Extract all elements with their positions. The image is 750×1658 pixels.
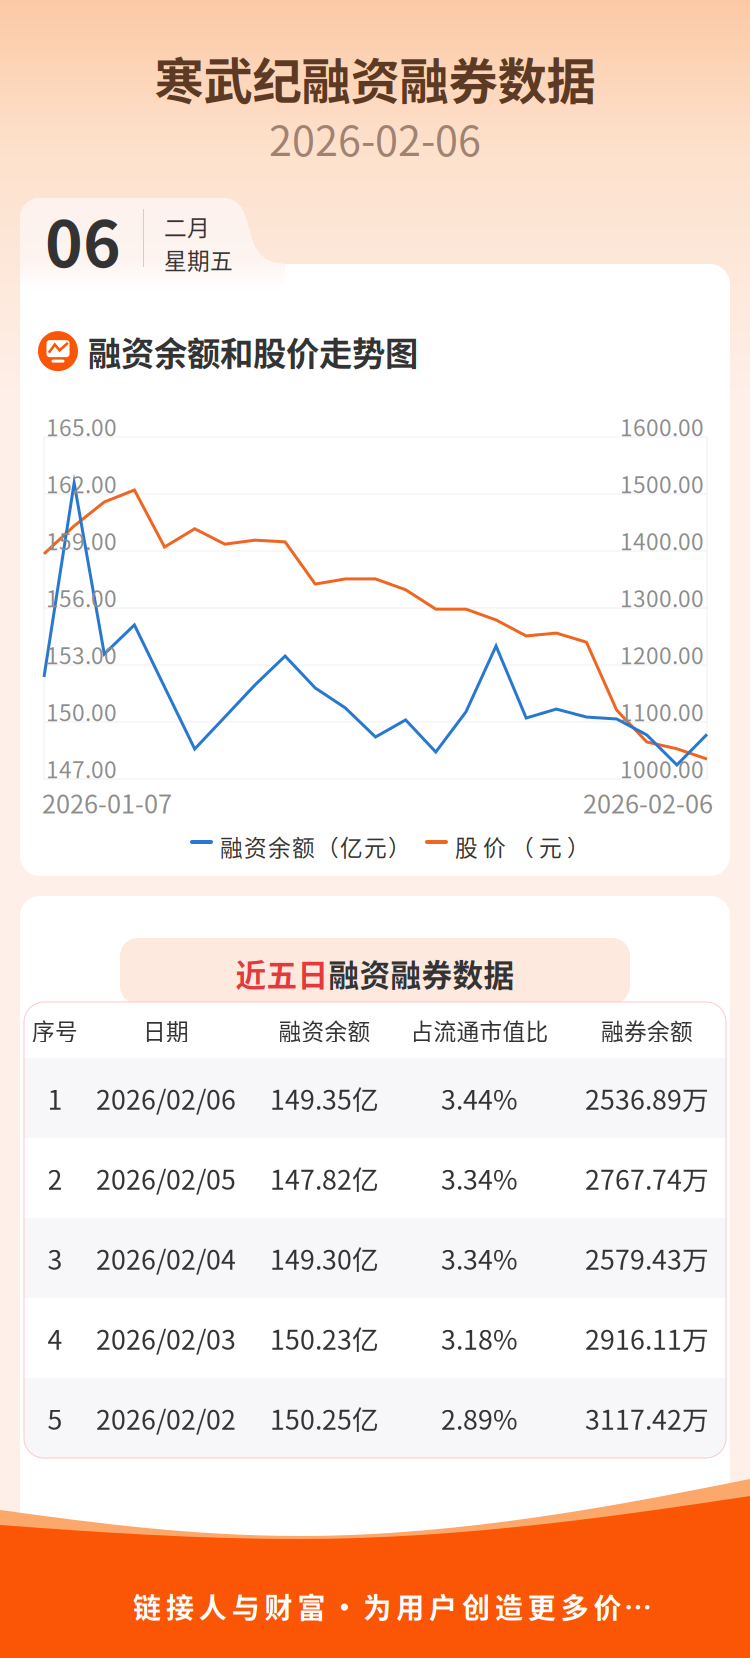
- staticText: 融资余额: [278, 1014, 370, 1046]
- staticText: 1: [47, 1079, 62, 1117]
- staticText: 融资余额（亿元）: [220, 830, 411, 863]
- staticText: 3.18%: [441, 1319, 518, 1357]
- staticText: 2026/02/04: [96, 1239, 236, 1277]
- staticText: 3117.42万: [585, 1399, 709, 1437]
- staticText: 5: [47, 1399, 62, 1437]
- staticText: 156.00: [46, 581, 117, 614]
- staticText: 149.30亿: [270, 1239, 379, 1277]
- staticText: 3.44%: [441, 1079, 518, 1117]
- staticText: 融券余额: [601, 1014, 693, 1046]
- staticText: 寒武纪融资融券数据: [154, 42, 595, 113]
- staticText: 149.35亿: [270, 1079, 379, 1117]
- staticText: 2579.43万: [585, 1239, 709, 1277]
- staticText: 2767.74万: [585, 1159, 709, 1197]
- staticText: 153.00: [46, 638, 117, 671]
- staticText: 06: [45, 193, 121, 286]
- staticText: 4: [47, 1319, 62, 1357]
- staticText: 1100.00: [620, 695, 704, 728]
- staticText: 1500.00: [620, 467, 704, 500]
- staticText: 147.00: [46, 752, 117, 785]
- staticText: 2.89%: [441, 1399, 518, 1437]
- staticText: 二月: [164, 210, 210, 243]
- staticText: 1200.00: [620, 638, 704, 671]
- staticText: 序号: [32, 1014, 78, 1046]
- staticText: 融资余额和股价走势图: [88, 327, 418, 375]
- staticText: 近五日: [235, 951, 328, 995]
- staticText: 2916.11万: [585, 1319, 709, 1357]
- staticText: 1300.00: [620, 581, 704, 614]
- staticText: 2026/02/06: [96, 1079, 236, 1117]
- staticText: 融资融券数据: [328, 951, 514, 995]
- staticText: 1600.00: [620, 410, 704, 443]
- staticText: 链接人与财富·为用户创造更多价值: [133, 1586, 654, 1626]
- staticText: 150.23亿: [270, 1319, 379, 1357]
- staticText: 2026/02/05: [96, 1159, 236, 1197]
- staticText: 2026-01-07: [42, 784, 172, 821]
- staticText: 1400.00: [620, 524, 704, 557]
- staticText: 1000.00: [620, 752, 704, 785]
- staticText: 2026-02-06: [583, 784, 713, 821]
- staticText: 2026/02/02: [96, 1399, 236, 1437]
- staticText: 2536.89万: [585, 1079, 709, 1117]
- staticText: 147.82亿: [270, 1159, 379, 1197]
- staticText: 150.25亿: [270, 1399, 379, 1437]
- staticText: 3.34%: [441, 1239, 518, 1277]
- staticText: 占流通市值比: [410, 1014, 548, 1046]
- staticText: 159.00: [46, 524, 117, 557]
- staticText: 星期五: [164, 243, 233, 276]
- staticText: 162.00: [46, 467, 117, 500]
- staticText: 150.00: [46, 695, 117, 728]
- staticText: 2026/02/03: [96, 1319, 236, 1357]
- staticText: 3: [47, 1239, 62, 1277]
- staticText: 3.34%: [441, 1159, 518, 1197]
- staticText: 日期: [143, 1014, 189, 1046]
- staticText: 165.00: [46, 410, 117, 443]
- staticText: 2: [47, 1159, 62, 1197]
- staticText: 2026-02-06: [269, 108, 481, 168]
- staticText: 股价（元）: [455, 830, 590, 863]
